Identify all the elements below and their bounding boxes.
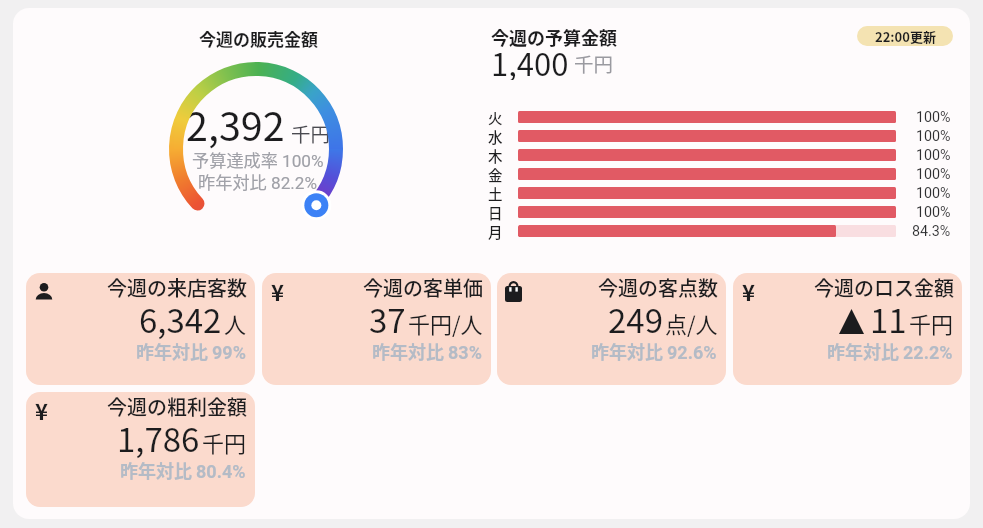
staticText: 99% xyxy=(212,342,246,363)
staticText: 100% xyxy=(282,151,324,171)
staticText: 100% xyxy=(916,185,951,202)
staticText: 千円 xyxy=(291,119,331,147)
staticText: 木 xyxy=(488,145,503,165)
staticText: 水 xyxy=(488,126,503,146)
staticText: 今週の予算金額 xyxy=(491,24,617,50)
staticText: 今週の来店客数 xyxy=(107,273,247,302)
staticText: 2,392 xyxy=(186,95,285,151)
staticText: 千円 xyxy=(909,307,954,339)
staticText: 点/人 xyxy=(665,307,718,339)
staticText: 昨年対比 xyxy=(827,338,899,364)
staticText: 80.4% xyxy=(196,461,246,482)
staticText: 6,342 xyxy=(139,295,222,343)
staticText: 昨年対比 xyxy=(120,457,192,483)
button[interactable]: 22:00更新 xyxy=(857,26,953,46)
staticText: 人 xyxy=(224,307,247,339)
staticText: 92.6% xyxy=(667,342,717,363)
staticText: 1,786 xyxy=(117,414,200,462)
staticText: 千円 xyxy=(574,49,614,77)
staticText: 今週のロス金額 xyxy=(814,273,954,302)
staticText: 84.3% xyxy=(912,223,951,240)
staticText: 100% xyxy=(916,166,951,183)
staticText: 予算達成率 xyxy=(192,147,278,172)
staticText: 22:00更新 xyxy=(875,27,936,46)
staticText: 249 xyxy=(608,295,663,343)
staticText: 今週の客点数 xyxy=(598,273,718,302)
staticText: 22.2% xyxy=(903,342,953,363)
staticText: 100% xyxy=(916,204,951,221)
button[interactable]: 今週の来店客数 xyxy=(26,273,255,385)
staticText: 100% xyxy=(916,128,951,145)
staticText: 昨年対比 xyxy=(591,338,663,364)
staticText: 今週の粗利金額 xyxy=(107,392,247,421)
staticText: 昨年対比 xyxy=(372,338,444,364)
staticText: 日 xyxy=(488,202,503,222)
staticText: 1,400 xyxy=(491,40,569,80)
staticText: 千円/人 xyxy=(408,307,483,339)
button[interactable]: ¥ xyxy=(262,273,491,385)
staticText: 83% xyxy=(448,342,482,363)
staticText: 今週の客単価 xyxy=(363,273,483,302)
staticText: 37 xyxy=(369,295,406,343)
staticText: 82.2% xyxy=(271,173,318,193)
staticText: 火 xyxy=(488,107,503,127)
staticText: ¥ xyxy=(742,275,755,307)
staticText: 今週の販売金額 xyxy=(199,26,318,51)
staticText: 11 xyxy=(870,295,907,343)
staticText: 金 xyxy=(488,164,503,184)
staticText: 昨年対比 xyxy=(198,169,267,194)
button[interactable]: ¥ xyxy=(26,392,255,507)
staticText: 千円 xyxy=(202,426,247,458)
staticText: 100% xyxy=(916,109,951,126)
staticText: ¥ xyxy=(35,394,48,426)
staticText: 月 xyxy=(488,221,503,241)
staticText: 100% xyxy=(916,147,951,164)
staticText: 土 xyxy=(488,183,503,203)
staticText: 昨年対比 xyxy=(136,338,208,364)
button[interactable]: ¥ xyxy=(733,273,962,385)
button[interactable]: 今週の客点数 xyxy=(497,273,726,385)
staticText: ¥ xyxy=(271,275,284,307)
